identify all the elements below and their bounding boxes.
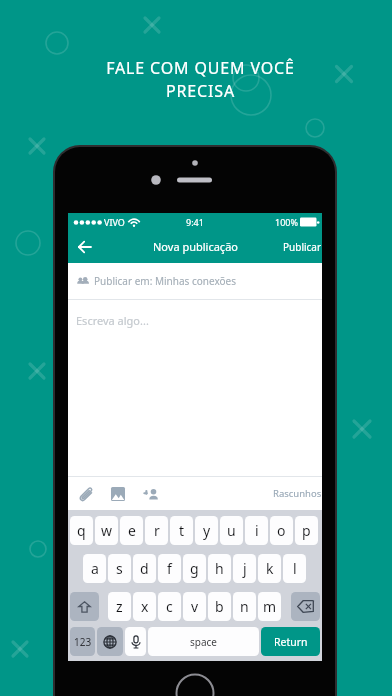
staticText: m bbox=[263, 597, 277, 616]
staticText: j bbox=[243, 559, 247, 578]
staticText: b bbox=[215, 597, 224, 616]
button[interactable]: Voltar bbox=[68, 230, 100, 263]
staticText: 123 bbox=[74, 635, 92, 649]
staticText: a bbox=[91, 559, 99, 578]
button[interactable]: b bbox=[208, 592, 231, 621]
button[interactable]: Adicionar imagem bbox=[107, 483, 129, 505]
staticText: h bbox=[215, 559, 224, 578]
button[interactable]: r bbox=[145, 516, 168, 545]
button[interactable]: l bbox=[283, 554, 306, 583]
staticText: r bbox=[154, 521, 160, 540]
button[interactable]: Escreva algo... bbox=[68, 300, 322, 476]
staticText: Nova publicação bbox=[153, 239, 238, 254]
staticText: u bbox=[227, 521, 236, 540]
staticText: 100% bbox=[275, 216, 298, 228]
button[interactable]: i bbox=[245, 516, 268, 545]
button[interactable]: m bbox=[258, 592, 281, 621]
button[interactable]: Ditado por voz bbox=[125, 627, 146, 656]
button[interactable]: g bbox=[183, 554, 206, 583]
button[interactable]: space bbox=[148, 627, 259, 656]
staticText: d bbox=[140, 559, 149, 578]
button[interactable]: Rascunhos bbox=[273, 482, 322, 505]
button[interactable]: Marcar pessoa bbox=[139, 483, 161, 505]
staticText: c bbox=[166, 597, 173, 616]
button[interactable]: Publicar em: Minhas conexões bbox=[68, 263, 322, 299]
button[interactable]: w bbox=[95, 516, 118, 545]
button[interactable]: v bbox=[183, 592, 206, 621]
button[interactable]: s bbox=[108, 554, 131, 583]
staticText: z bbox=[116, 597, 123, 616]
staticText: FALE COM QUEM VOCÊ PRECISA bbox=[9, 57, 392, 102]
button[interactable]: z bbox=[108, 592, 131, 621]
button[interactable]: p bbox=[295, 516, 318, 545]
staticText: s bbox=[116, 559, 123, 578]
button[interactable]: t bbox=[170, 516, 193, 545]
staticText: q bbox=[77, 521, 86, 540]
button[interactable]: d bbox=[133, 554, 156, 583]
button[interactable]: n bbox=[233, 592, 256, 621]
staticText: o bbox=[277, 521, 286, 540]
staticText: l bbox=[293, 559, 297, 578]
button[interactable]: h bbox=[208, 554, 231, 583]
staticText: space bbox=[190, 635, 217, 649]
staticText: f bbox=[167, 559, 172, 578]
staticText: Publicar em: Minhas conexões bbox=[94, 274, 236, 288]
button[interactable]: f bbox=[158, 554, 181, 583]
staticText: t bbox=[179, 521, 185, 540]
staticText: Rascunhos bbox=[273, 487, 322, 500]
button[interactable]: a bbox=[83, 554, 106, 583]
staticText: p bbox=[302, 521, 311, 540]
staticText: g bbox=[190, 559, 199, 578]
button[interactable]: k bbox=[258, 554, 281, 583]
staticText: Escreva algo... bbox=[76, 313, 149, 328]
button[interactable]: Return bbox=[261, 627, 320, 656]
staticText: i bbox=[255, 521, 259, 540]
button[interactable]: u bbox=[220, 516, 243, 545]
button[interactable]: Shift bbox=[70, 592, 99, 621]
button[interactable]: e bbox=[120, 516, 143, 545]
button[interactable]: Apagar bbox=[291, 592, 320, 621]
staticText: y bbox=[203, 521, 211, 540]
button[interactable]: Anexar arquivo bbox=[75, 483, 97, 505]
button[interactable]: c bbox=[158, 592, 181, 621]
button[interactable]: y bbox=[195, 516, 218, 545]
button[interactable]: j bbox=[233, 554, 256, 583]
staticText: 9:41 bbox=[186, 216, 204, 228]
staticText: Return bbox=[274, 635, 308, 649]
button[interactable]: 123 bbox=[70, 627, 95, 656]
staticText: k bbox=[266, 559, 274, 578]
staticText: w bbox=[101, 521, 113, 540]
staticText: e bbox=[128, 521, 136, 540]
button[interactable]: o bbox=[270, 516, 293, 545]
button[interactable]: q bbox=[70, 516, 93, 545]
button[interactable]: Publicar bbox=[278, 234, 322, 260]
button[interactable]: x bbox=[133, 592, 156, 621]
button[interactable]: Mudar idioma bbox=[97, 627, 123, 656]
staticText: n bbox=[240, 597, 249, 616]
staticText: x bbox=[141, 597, 149, 616]
staticText: Publicar bbox=[283, 240, 322, 254]
staticText: VIVO bbox=[104, 216, 125, 228]
staticText: v bbox=[191, 597, 199, 616]
